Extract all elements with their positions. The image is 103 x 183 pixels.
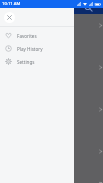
staticText: Play History (17, 46, 43, 52)
staticText: Settings (17, 59, 35, 65)
button[interactable]: Search (74, 0, 103, 14)
staticText: Favorites (17, 33, 37, 39)
button[interactable]: Play History (0, 42, 74, 55)
staticText: 10:11 AM (2, 1, 21, 7)
button[interactable]: Favorites (0, 29, 74, 42)
button[interactable]: Settings (0, 55, 74, 68)
button[interactable]: Close (4, 12, 15, 23)
